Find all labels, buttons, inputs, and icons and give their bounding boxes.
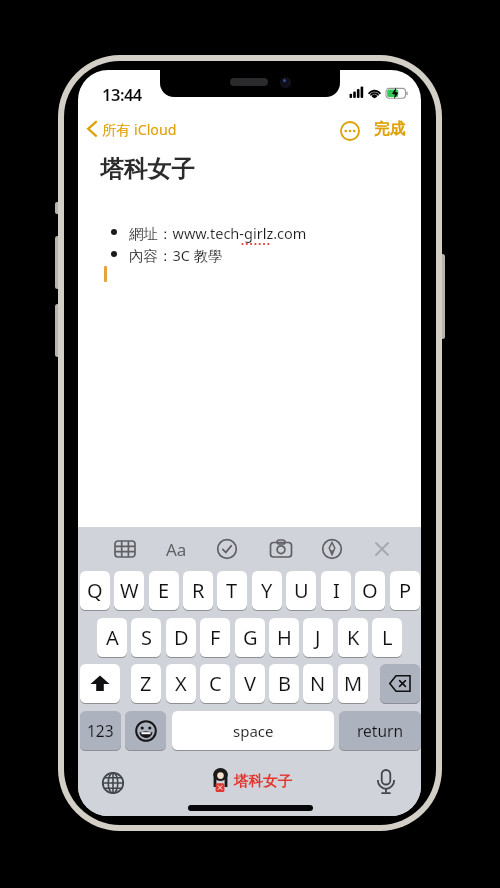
button[interactable]	[85, 120, 99, 138]
staticText: 123	[87, 720, 114, 741]
button[interactable]	[114, 538, 136, 560]
button[interactable]: U	[286, 571, 316, 610]
button[interactable]: A	[97, 618, 127, 657]
staticText: return	[357, 720, 403, 741]
staticText: 塔科女子	[100, 154, 195, 184]
button[interactable]	[80, 664, 120, 703]
button[interactable]: Aa	[164, 537, 188, 561]
button[interactable]: K	[338, 618, 368, 657]
button[interactable]	[380, 664, 420, 703]
staticText: 內容：3C 教學	[129, 245, 223, 265]
staticText: G	[243, 624, 258, 651]
staticText: S	[141, 624, 152, 651]
button[interactable]: J	[303, 618, 333, 657]
staticText: J	[315, 624, 321, 651]
staticText: P	[399, 577, 412, 604]
button[interactable]: Y	[252, 571, 282, 610]
staticText: Aa	[166, 538, 187, 561]
staticText: V	[244, 670, 256, 697]
staticText: E	[158, 577, 170, 604]
button[interactable]	[270, 538, 292, 560]
staticText: U	[294, 577, 309, 604]
button[interactable]: Q	[80, 571, 110, 610]
button[interactable]	[372, 539, 392, 559]
staticText: D	[174, 624, 189, 651]
staticText: I	[333, 577, 340, 604]
button[interactable]: B	[269, 664, 299, 703]
button[interactable]	[102, 772, 124, 794]
button[interactable]	[216, 538, 238, 560]
button[interactable]: return	[339, 711, 421, 750]
button[interactable]: N	[303, 664, 333, 703]
button[interactable]	[340, 121, 360, 141]
button[interactable]: O	[355, 571, 385, 610]
button[interactable]	[321, 538, 343, 560]
button[interactable]: S	[131, 618, 161, 657]
staticText: 網址：www.tech-girlz.com	[129, 223, 307, 243]
button[interactable]: T	[217, 571, 247, 610]
button[interactable]: D	[166, 618, 196, 657]
staticText: Q	[87, 577, 103, 604]
staticText: N	[310, 670, 326, 697]
button[interactable]: I	[321, 571, 351, 610]
button[interactable]: 所有 iCloud	[102, 120, 177, 139]
staticText: A	[106, 624, 119, 651]
button[interactable]: L	[372, 618, 402, 657]
button[interactable]: E	[149, 571, 179, 610]
staticText: space	[233, 721, 274, 741]
staticText: K	[347, 624, 360, 651]
staticText: W	[120, 577, 139, 604]
button[interactable]	[212, 768, 229, 794]
staticText: 13:44	[102, 83, 142, 105]
staticText: B	[278, 670, 291, 697]
button[interactable]: V	[235, 664, 265, 703]
staticText: F	[210, 624, 221, 651]
staticText: M	[344, 670, 363, 697]
staticText: L	[382, 624, 393, 651]
button[interactable]	[125, 711, 166, 750]
staticText: Y	[261, 577, 273, 604]
button[interactable]: G	[235, 618, 265, 657]
staticText: X	[175, 670, 187, 697]
staticText: R	[192, 577, 205, 604]
button[interactable]: R	[183, 571, 213, 610]
button[interactable]: X	[166, 664, 196, 703]
button[interactable]: C	[200, 664, 230, 703]
button[interactable]: 123	[80, 711, 121, 750]
staticText: 塔科女子	[234, 772, 292, 790]
button[interactable]: H	[269, 618, 299, 657]
staticText: H	[277, 624, 292, 651]
button[interactable]: space	[172, 711, 334, 750]
button[interactable]: F	[200, 618, 230, 657]
staticText: 所有 iCloud	[102, 120, 177, 139]
button[interactable]: Z	[131, 664, 161, 703]
button[interactable]: W	[114, 571, 144, 610]
staticText: Z	[140, 670, 152, 697]
staticText: 完成	[374, 119, 405, 139]
staticText: T	[226, 577, 238, 604]
button[interactable]	[374, 768, 398, 796]
button[interactable]: P	[390, 571, 420, 610]
button[interactable]: M	[338, 664, 368, 703]
staticText: C	[209, 670, 222, 697]
staticText: O	[362, 577, 378, 604]
button[interactable]: 完成	[374, 119, 405, 139]
